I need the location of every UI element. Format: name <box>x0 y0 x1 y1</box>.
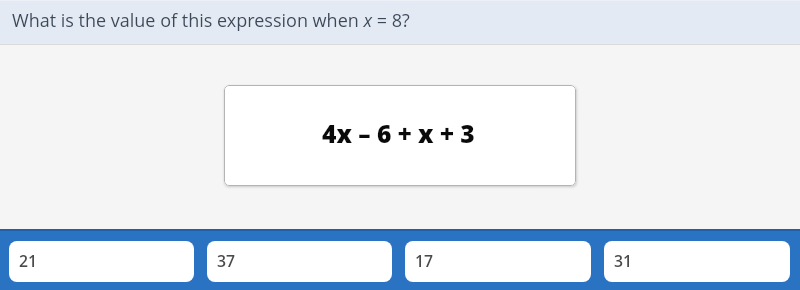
staticText: 37 <box>217 250 236 272</box>
button[interactable]: 17 <box>405 241 591 282</box>
button[interactable]: 37 <box>207 241 392 282</box>
staticText: 4x – 6 + x + 3 <box>322 117 475 151</box>
button[interactable]: 21 <box>9 241 194 282</box>
staticText: 31 <box>614 250 633 272</box>
staticText: What is the value of this expression whe… <box>12 8 410 33</box>
staticText: 17 <box>415 250 434 272</box>
button[interactable]: 31 <box>604 241 790 282</box>
staticText: 21 <box>19 250 38 272</box>
